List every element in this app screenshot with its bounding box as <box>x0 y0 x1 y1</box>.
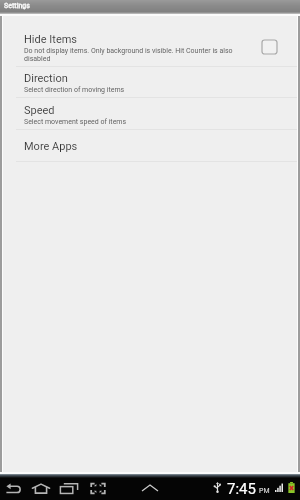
button[interactable]: Direction <box>3 67 297 98</box>
staticText: Settings <box>4 1 30 10</box>
staticText: Do not display items. Only background is… <box>24 47 254 63</box>
button[interactable]: Screenshot <box>85 474 111 500</box>
button[interactable]: Back <box>0 474 26 500</box>
staticText: Speed <box>24 104 55 117</box>
staticText: More Apps <box>24 140 78 153</box>
button[interactable]: Show notifications <box>138 474 162 500</box>
button[interactable]: Recent apps <box>55 474 83 500</box>
button[interactable]: Speed <box>3 98 297 130</box>
staticText: Select movement speed of items <box>24 118 127 126</box>
button[interactable]: Home <box>27 474 55 500</box>
staticText: Select direction of moving items <box>24 86 125 94</box>
staticText: Direction <box>24 72 68 85</box>
button[interactable]: Hide Items <box>3 26 297 67</box>
button[interactable]: More Apps <box>3 130 297 162</box>
staticText: PM <box>259 487 270 495</box>
staticText: Hide Items <box>24 33 78 46</box>
staticText: 7:45 <box>227 480 256 498</box>
